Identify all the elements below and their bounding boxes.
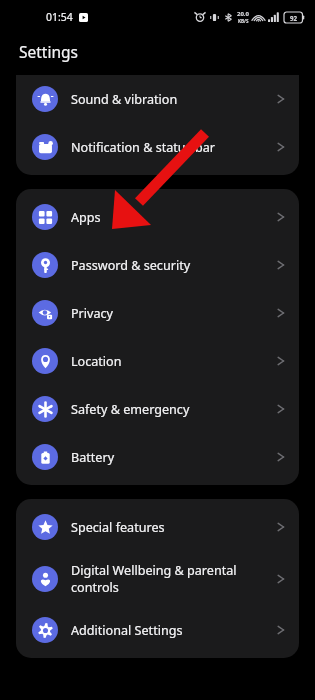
button[interactable]: Special features	[16, 503, 299, 551]
other: Open Privacy	[277, 306, 285, 320]
other: Open Additional Settings	[277, 623, 285, 637]
other: Open Apps	[277, 210, 285, 224]
button[interactable]: Password & security	[16, 241, 299, 289]
other: Open Digital Wellbeing & parental contro…	[277, 572, 285, 586]
button[interactable]: Digital Wellbeing & parental controls	[16, 551, 299, 606]
staticText: Privacy	[71, 305, 277, 322]
staticText: Location	[71, 353, 277, 370]
other: Open Location	[277, 354, 285, 368]
button[interactable]: Safety & emergency	[16, 385, 299, 433]
staticText: Settings	[19, 41, 78, 62]
staticText: Apps	[71, 209, 277, 226]
other: Open Special features	[277, 520, 285, 534]
button[interactable]: Battery	[16, 433, 299, 481]
staticText: Notification & status bar	[71, 139, 277, 156]
staticText: 01:54	[46, 10, 73, 24]
staticText: 20.0	[237, 10, 249, 18]
other: Open Password & security	[277, 258, 285, 272]
button[interactable]: Additional Settings	[16, 606, 299, 654]
staticText: Special features	[71, 519, 277, 536]
button[interactable]: Notification & status bar	[16, 123, 299, 171]
button[interactable]: Apps	[16, 193, 299, 241]
button[interactable]: Privacy	[16, 289, 299, 337]
staticText: Password & security	[71, 257, 277, 274]
staticText: 92	[290, 14, 298, 22]
staticText: Sound & vibration	[71, 91, 277, 108]
staticText: KB/S	[238, 18, 249, 24]
other: Open Battery	[277, 450, 285, 464]
staticText: Safety & emergency	[71, 401, 277, 418]
staticText: Additional Settings	[71, 622, 277, 639]
other: Open Notification & status bar	[277, 140, 285, 154]
button[interactable]: Location	[16, 337, 299, 385]
button[interactable]: Sound & vibration	[16, 75, 299, 123]
staticText: Digital Wellbeing & parental controls	[71, 562, 277, 595]
other: Open Sound & vibration	[277, 92, 285, 106]
staticText: Battery	[71, 449, 277, 466]
other: Open Safety & emergency	[277, 402, 285, 416]
